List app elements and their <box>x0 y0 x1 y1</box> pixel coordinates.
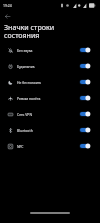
button[interactable]: Bluetooth <box>0 122 100 138</box>
button[interactable]: Будильник <box>0 58 100 74</box>
button[interactable]: Без звука <box>0 42 100 58</box>
button[interactable]: Toggle <box>80 47 90 53</box>
staticText: Значки строки состояния <box>4 22 55 40</box>
button[interactable]: Toggle <box>80 63 90 69</box>
button[interactable]: Toggle <box>80 111 90 117</box>
button[interactable]: Не беспокоить <box>0 74 100 90</box>
button[interactable]: Toggle <box>80 127 90 133</box>
button[interactable]: Toggle <box>80 143 90 149</box>
button[interactable]: Сеть VPN <box>0 106 100 122</box>
button[interactable]: Back <box>2 11 12 21</box>
button[interactable]: NFC <box>0 138 100 154</box>
staticText: Будильник <box>17 64 35 69</box>
staticText: Не беспокоить <box>17 80 42 85</box>
button[interactable]: Toggle <box>80 79 90 85</box>
staticText: NFC <box>17 144 24 149</box>
button[interactable]: Режим полёта <box>0 90 100 106</box>
staticText: Сеть VPN <box>17 112 32 117</box>
staticText: Режим полёта <box>17 96 41 101</box>
staticText: 19:24 <box>3 3 12 8</box>
button[interactable]: Toggle <box>80 95 90 101</box>
staticText: Без звука <box>17 48 33 53</box>
staticText: Bluetooth <box>17 128 33 133</box>
